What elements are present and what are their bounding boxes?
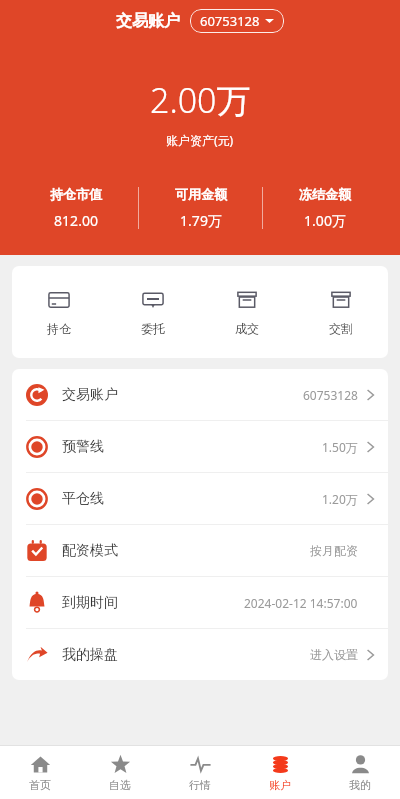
button[interactable]: 账户 [240,746,320,799]
staticText: 可用金额 [175,186,227,202]
button[interactable]: 我的 [320,746,400,799]
staticText: 交易账户 [62,386,118,404]
staticText: 交易账户 [116,11,180,31]
staticText: 行情 [189,778,211,792]
button[interactable]: 我的操盘 [12,629,388,680]
button[interactable]: 持仓 [12,282,106,342]
button[interactable]: 首页 [0,746,80,799]
button[interactable]: 交易账户 [12,369,388,420]
staticText: 2024-02-12 14:57:00 [244,595,358,611]
staticText: 账户资产(元) [166,132,234,148]
staticText: 预警线 [62,438,104,456]
button[interactable]: 自选 [80,746,160,799]
staticText: 到期时间 [62,594,118,612]
staticText: 1.79万 [180,211,222,230]
staticText: 首页 [29,778,51,792]
button[interactable]: 平仓线 [12,473,388,524]
staticText: 2.00万 [150,77,251,123]
staticText: 60753128 [200,12,260,30]
staticText: 持仓 [47,321,71,336]
button[interactable]: 行情 [160,746,240,799]
staticText: 进入设置 [310,647,358,662]
staticText: 1.20万 [322,491,358,507]
button[interactable]: 预警线 [12,421,388,472]
staticText: 自选 [109,778,131,792]
button[interactable]: 委托 [106,282,200,342]
button[interactable]: 到期时间 [12,577,388,628]
button[interactable]: 成交 [200,282,294,342]
staticText: 60753128 [303,387,358,403]
staticText: 平仓线 [62,490,104,508]
button[interactable]: 60753128 [190,9,284,33]
staticText: 配资模式 [62,542,118,560]
staticText: 交割 [329,321,353,336]
staticText: 冻结金额 [299,186,351,202]
staticText: 我的操盘 [62,646,118,664]
staticText: 我的 [349,778,371,792]
staticText: 812.00 [54,211,98,230]
staticText: 持仓市值 [50,186,102,202]
staticText: 账户 [269,778,291,792]
staticText: 成交 [235,321,259,336]
staticText: 1.50万 [322,439,358,455]
staticText: 按月配资 [310,543,358,558]
button[interactable]: 配资模式 [12,525,388,576]
staticText: 1.00万 [304,211,346,230]
staticText: 委托 [141,321,165,336]
button[interactable]: 交割 [294,282,388,342]
